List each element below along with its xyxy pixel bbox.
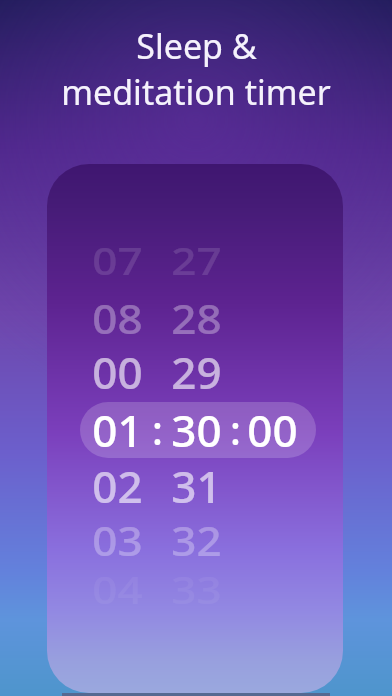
staticText: 28 (171, 290, 222, 346)
staticText: 29 (171, 344, 222, 402)
staticText: : (230, 402, 241, 456)
button[interactable]: 07 (57, 235, 177, 286)
staticText: 31 (171, 458, 222, 516)
staticText: 00 (247, 400, 298, 460)
button[interactable]: 01 (57, 400, 177, 460)
button[interactable]: 04 (57, 564, 177, 615)
staticText: 30 (171, 400, 222, 460)
button[interactable]: 32 (136, 512, 256, 568)
button[interactable]: 30 (136, 400, 256, 460)
staticText: 27 (171, 235, 222, 286)
staticText: Sleep & (136, 23, 257, 69)
button[interactable]: 33 (136, 564, 256, 615)
button[interactable]: 29 (136, 344, 256, 402)
button[interactable]: 28 (136, 290, 256, 346)
button[interactable]: 08 (57, 290, 177, 346)
button[interactable]: 02 (57, 458, 177, 516)
staticText: 01 (92, 400, 143, 460)
staticText: 02 (92, 458, 143, 516)
staticText: 00 (92, 344, 143, 402)
staticText: 03 (92, 512, 143, 568)
staticText: 32 (171, 512, 222, 568)
staticText: : (152, 402, 163, 456)
staticText: 04 (92, 564, 143, 615)
staticText: 08 (92, 290, 143, 346)
button[interactable] (80, 402, 316, 458)
staticText: 07 (92, 235, 143, 286)
button[interactable]: 00 (212, 400, 332, 460)
staticText: 33 (171, 564, 222, 615)
button[interactable]: 31 (136, 458, 256, 516)
staticText: meditation timer (61, 69, 331, 115)
button[interactable]: 00 (57, 344, 177, 402)
button[interactable]: 03 (57, 512, 177, 568)
button[interactable]: 27 (136, 235, 256, 286)
